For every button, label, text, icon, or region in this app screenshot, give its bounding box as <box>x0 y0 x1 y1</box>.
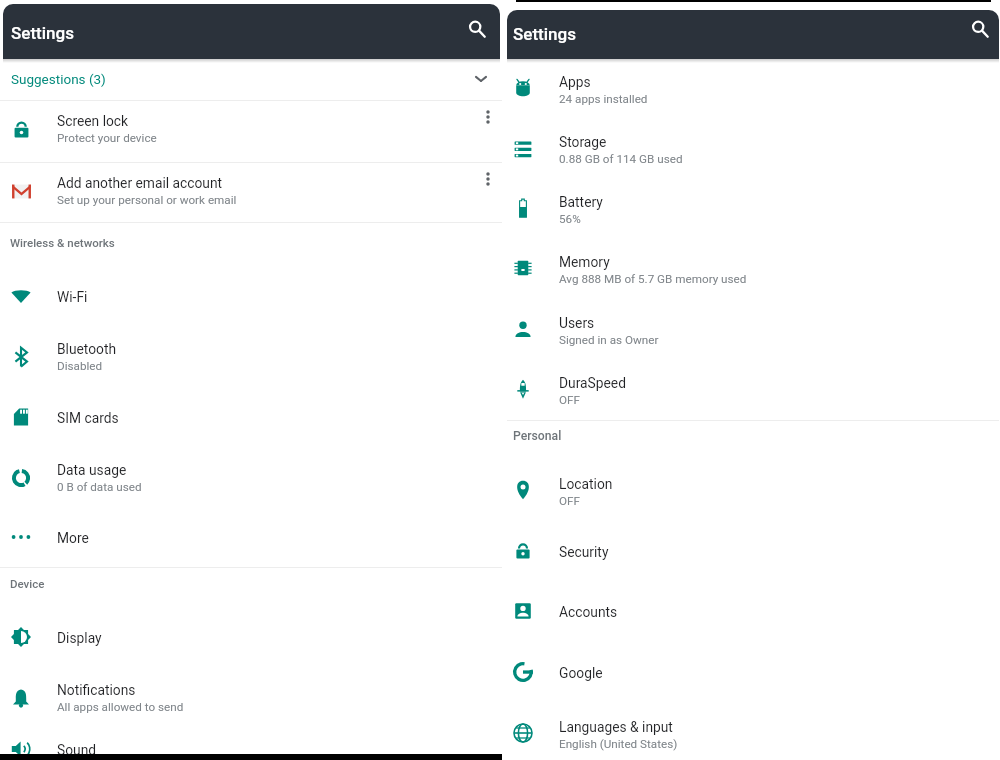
staticText: Sound <box>57 742 97 758</box>
staticText: Bluetooth <box>57 341 117 357</box>
staticText: Protect your device <box>57 131 157 145</box>
staticText: 24 apps installed <box>559 92 648 106</box>
staticText: Battery <box>559 194 603 210</box>
staticText: Security <box>559 544 609 560</box>
staticText: Suggestions (3) <box>11 71 106 87</box>
staticText: OFF <box>559 494 580 508</box>
staticText: Users <box>559 315 595 331</box>
button[interactable]: Apps <box>502 73 1000 133</box>
staticText: Storage <box>559 134 607 150</box>
button[interactable]: Suggestions (3) <box>0 60 502 99</box>
staticText: Notifications <box>57 682 136 698</box>
staticText: Data usage <box>57 462 127 478</box>
staticText: Disabled <box>57 359 103 373</box>
staticText: DuraSpeed <box>559 375 626 391</box>
button[interactable]: Sound <box>0 741 502 760</box>
staticText: 0.88 GB of 114 GB used <box>559 152 683 166</box>
button[interactable]: Storage <box>502 133 1000 193</box>
button[interactable]: Languages & input <box>502 718 1000 760</box>
staticText: 0 B of data used <box>57 480 142 494</box>
staticText: Wireless & networks <box>10 236 115 249</box>
button[interactable]: Add another email account <box>0 162 502 223</box>
button[interactable]: More <box>0 529 502 575</box>
staticText: Personal <box>513 429 562 443</box>
button[interactable]: Battery <box>502 193 1000 253</box>
staticText: Location <box>559 476 613 492</box>
staticText: Wi-Fi <box>57 289 88 305</box>
button[interactable]: Search <box>458 10 496 48</box>
button[interactable]: Data usage <box>0 461 502 521</box>
staticText: Display <box>57 630 102 646</box>
staticText: Screen lock <box>57 113 129 129</box>
staticText: OFF <box>559 393 580 407</box>
staticText: Languages & input <box>559 719 673 735</box>
staticText: Avg 888 MB of 5.7 GB memory used <box>559 272 747 286</box>
button[interactable]: Security <box>502 543 1000 589</box>
staticText: Settings <box>513 24 576 44</box>
button[interactable]: More options <box>475 104 501 130</box>
button[interactable]: Accounts <box>502 603 1000 649</box>
staticText: Add another email account <box>57 175 223 191</box>
staticText: More <box>57 530 89 546</box>
button[interactable]: Users <box>502 314 1000 374</box>
staticText: All apps allowed to send <box>57 700 184 714</box>
button[interactable]: Google <box>502 664 1000 710</box>
staticText: Signed in as Owner <box>559 333 659 347</box>
staticText: 56% <box>559 212 581 226</box>
staticText: Google <box>559 665 603 681</box>
staticText: SIM cards <box>57 410 119 426</box>
staticText: Set up your personal or work email <box>57 193 237 207</box>
staticText: Accounts <box>559 604 618 620</box>
staticText: Settings <box>11 23 74 43</box>
button[interactable]: Screen lock <box>0 100 502 161</box>
button[interactable]: More options <box>475 166 501 192</box>
staticText: Apps <box>559 74 591 90</box>
button[interactable]: Wi-Fi <box>0 288 502 334</box>
button[interactable]: Bluetooth <box>0 340 502 400</box>
button[interactable]: Notifications <box>0 681 502 741</box>
button[interactable]: DuraSpeed <box>502 374 1000 434</box>
button[interactable]: SIM cards <box>0 409 502 455</box>
button[interactable]: Search <box>961 10 999 48</box>
staticText: Memory <box>559 254 610 270</box>
button[interactable]: Location <box>502 475 1000 535</box>
staticText: Device <box>10 577 45 590</box>
button[interactable]: Memory <box>502 253 1000 313</box>
button[interactable]: Display <box>0 629 502 675</box>
staticText: English (United States) <box>559 737 678 751</box>
